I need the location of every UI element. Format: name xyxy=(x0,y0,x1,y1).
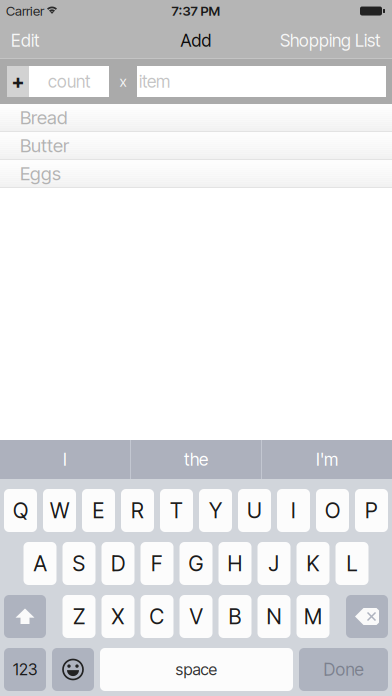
button[interactable]: Shift xyxy=(4,595,46,638)
staticText: space xyxy=(175,660,217,679)
staticText: + xyxy=(11,69,24,94)
staticText: M xyxy=(304,604,322,629)
button[interactable]: Z xyxy=(62,595,95,638)
staticText: L xyxy=(346,551,357,576)
button[interactable]: Shopping List xyxy=(271,22,392,59)
staticText: T xyxy=(170,498,183,523)
button[interactable]: Emoji xyxy=(52,648,94,691)
button[interactable]: Butter xyxy=(0,132,392,159)
button[interactable]: A xyxy=(23,542,56,585)
button[interactable]: U xyxy=(238,489,271,532)
staticText: H xyxy=(227,551,242,576)
button[interactable]: I'm xyxy=(262,440,392,479)
button[interactable]: E xyxy=(82,489,115,532)
staticText: Edit xyxy=(11,30,39,51)
button[interactable]: the xyxy=(131,440,261,479)
button[interactable]: D xyxy=(101,542,134,585)
button[interactable]: B xyxy=(218,595,251,638)
staticText: 7:37 PM xyxy=(171,3,220,19)
button[interactable]: N xyxy=(257,595,290,638)
button[interactable]: R xyxy=(121,489,154,532)
staticText: U xyxy=(247,498,262,523)
staticText: X xyxy=(111,604,124,629)
button[interactable]: I xyxy=(0,440,130,479)
button[interactable]: X xyxy=(101,595,134,638)
staticText: I xyxy=(63,449,67,470)
button[interactable]: M xyxy=(296,595,329,638)
staticText: F xyxy=(151,551,163,576)
staticText: G xyxy=(188,551,203,576)
staticText: K xyxy=(306,551,319,576)
staticText: Z xyxy=(73,604,85,629)
staticText: V xyxy=(189,604,202,629)
button[interactable]: Eggs xyxy=(0,160,392,187)
button[interactable]: P xyxy=(355,489,388,532)
staticText: the xyxy=(184,449,208,470)
staticText: W xyxy=(50,498,69,523)
button[interactable]: L xyxy=(335,542,368,585)
button[interactable]: C xyxy=(140,595,173,638)
button[interactable]: O xyxy=(316,489,349,532)
staticText: Bread xyxy=(20,106,67,129)
staticText: I'm xyxy=(316,449,338,470)
staticText: Shopping List xyxy=(280,30,380,51)
button[interactable]: Done xyxy=(299,648,388,691)
staticText: D xyxy=(111,551,125,576)
staticText: N xyxy=(266,604,281,629)
button[interactable]: W xyxy=(43,489,76,532)
staticText: Carrier xyxy=(6,3,44,19)
button[interactable]: H xyxy=(218,542,251,585)
staticText: E xyxy=(92,498,104,523)
staticText: Butter xyxy=(20,134,69,157)
staticText: B xyxy=(228,604,241,629)
button[interactable]: I xyxy=(277,489,310,532)
button[interactable]: Q xyxy=(4,489,37,532)
button[interactable]: Add item xyxy=(7,66,29,97)
staticText: Add xyxy=(180,30,211,51)
button[interactable]: S xyxy=(62,542,95,585)
staticText: x xyxy=(119,73,126,90)
staticText: O xyxy=(325,498,340,523)
button[interactable]: F xyxy=(140,542,173,585)
button[interactable]: J xyxy=(257,542,290,585)
button[interactable]: K xyxy=(296,542,329,585)
button[interactable]: Delete xyxy=(346,595,388,638)
staticText: Eggs xyxy=(20,162,61,185)
staticText: count xyxy=(48,71,90,92)
staticText: 123 xyxy=(13,660,37,679)
staticText: Q xyxy=(13,498,28,523)
button[interactable]: space xyxy=(100,648,293,691)
staticText: C xyxy=(149,604,164,629)
staticText: A xyxy=(33,551,46,576)
staticText: item xyxy=(139,71,170,92)
button[interactable]: Y xyxy=(199,489,232,532)
button[interactable]: Edit xyxy=(0,22,48,59)
button[interactable]: G xyxy=(179,542,212,585)
staticText: I xyxy=(291,498,296,523)
button[interactable]: V xyxy=(179,595,212,638)
staticText: Y xyxy=(209,498,222,523)
staticText: P xyxy=(365,498,378,523)
staticText: Done xyxy=(323,659,363,680)
button[interactable]: Numbers and symbols xyxy=(4,648,46,691)
staticText: J xyxy=(268,551,279,576)
button[interactable]: Bread xyxy=(0,104,392,131)
button[interactable]: T xyxy=(160,489,193,532)
staticText: R xyxy=(131,498,144,523)
staticText: S xyxy=(72,551,85,576)
